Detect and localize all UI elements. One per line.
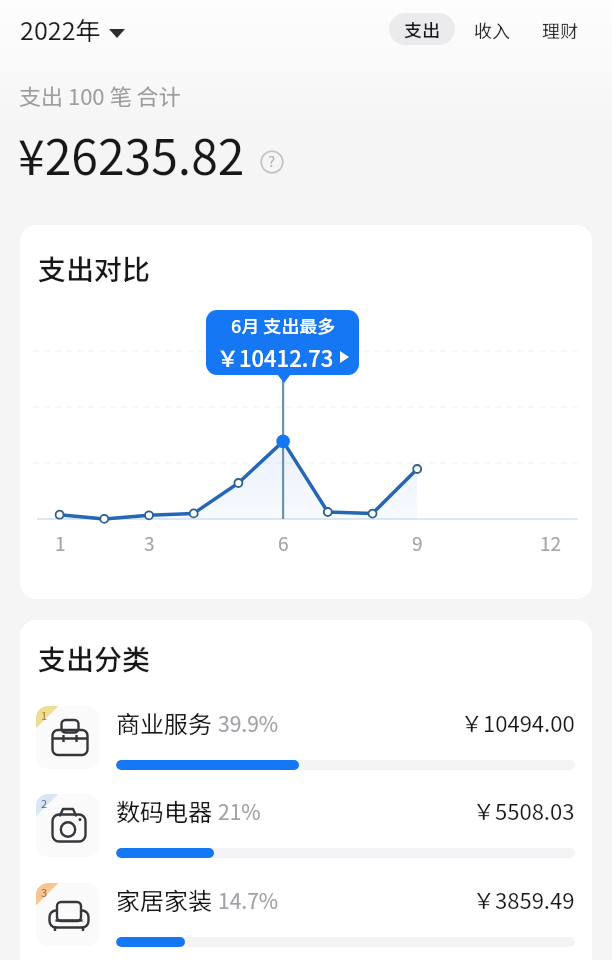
button[interactable]: 1	[20, 701, 592, 773]
staticText: 收入	[474, 17, 510, 43]
staticText: ￥3859.49	[473, 883, 575, 915]
button[interactable]: Help	[260, 150, 284, 174]
button[interactable]: 收入	[455, 14, 526, 45]
staticText: ￥10412.73	[217, 341, 334, 373]
staticText: 数码电器	[116, 793, 212, 828]
staticText: 1	[41, 707, 48, 723]
staticText: 39.9%	[218, 708, 279, 738]
staticText: 支出对比	[38, 248, 151, 289]
staticText: 支出 100 笔 合计	[19, 79, 181, 111]
staticText: ¥26235.82	[18, 119, 245, 189]
button[interactable]: 支出	[389, 13, 455, 45]
staticText: 6	[278, 529, 289, 557]
staticText: 商业服务	[116, 705, 212, 740]
staticText: 理财	[542, 17, 578, 43]
staticText: ?	[268, 150, 276, 172]
staticText: 12	[540, 529, 562, 557]
staticText: 2022年	[20, 11, 101, 47]
staticText: 家居家装	[116, 882, 212, 917]
staticText: 14.7%	[218, 885, 279, 915]
staticText: 2	[41, 795, 48, 811]
button[interactable]: 理财	[526, 14, 612, 45]
staticText: 21%	[218, 796, 261, 826]
staticText: ￥10494.00	[461, 706, 575, 738]
staticText: ￥5508.03	[473, 794, 575, 826]
staticText: 6月 支出最多	[231, 312, 336, 338]
staticText: 3	[144, 529, 155, 557]
button[interactable]: 2	[20, 789, 592, 861]
staticText: 支出分类	[38, 638, 151, 679]
button[interactable]: 2022年	[0, 3, 141, 55]
staticText: 支出	[404, 16, 440, 42]
button[interactable]: 6月 支出最多	[206, 310, 359, 375]
button[interactable]: 3	[20, 878, 592, 950]
staticText: 3	[41, 884, 48, 900]
staticText: 1	[55, 529, 66, 557]
staticText: 9	[412, 529, 423, 557]
